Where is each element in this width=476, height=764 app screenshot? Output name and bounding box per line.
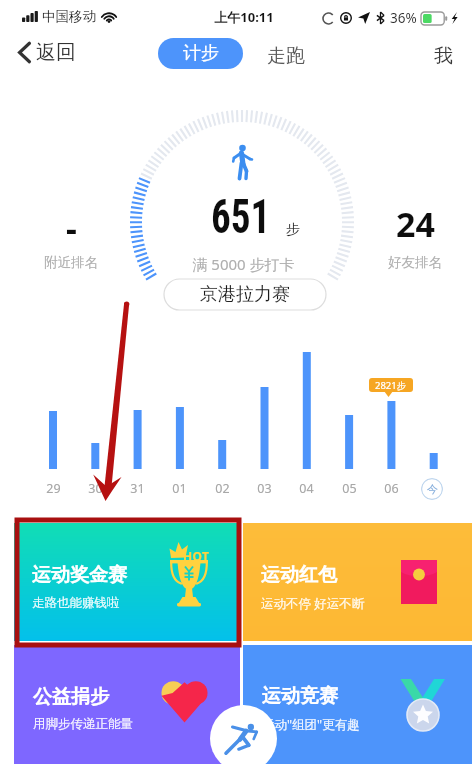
button[interactable]: 今 <box>421 478 443 500</box>
staticText: 计步 <box>183 42 219 65</box>
staticText: 24 <box>396 201 435 247</box>
staticText: 我 <box>434 44 453 68</box>
staticText: 上午10:11 <box>214 8 274 26</box>
button[interactable]: Start running <box>210 705 277 764</box>
staticText: 05 <box>342 480 357 497</box>
staticText: 02 <box>215 480 230 497</box>
staticText: 今 <box>427 482 438 496</box>
staticText: HOT <box>183 548 210 564</box>
staticText: 京港拉力赛 <box>200 283 290 306</box>
button[interactable]: 我 <box>429 40 458 72</box>
staticText: 06 <box>384 480 399 497</box>
staticText: - <box>66 205 77 251</box>
staticText: 运动竞赛 <box>262 684 338 708</box>
button[interactable]: 计步 <box>158 38 243 69</box>
staticText: 30 <box>88 480 103 497</box>
staticText: 36% <box>390 9 417 27</box>
button[interactable]: 运动奖金赛 <box>14 523 240 641</box>
staticText: 运动"组团"更有趣 <box>262 716 360 733</box>
button[interactable]: 公益捐步 <box>14 645 240 764</box>
staticText: 走路也能赚钱啦 <box>32 595 120 611</box>
staticText: 走跑 <box>267 44 305 68</box>
staticText: 满 5000 步打卡 <box>192 254 295 274</box>
staticText: 附近排名 <box>44 254 98 271</box>
button[interactable]: 运动竞赛 <box>243 645 472 764</box>
staticText: 好友排名 <box>388 254 442 271</box>
staticText: 04 <box>299 480 314 497</box>
staticText: 返回 <box>36 40 76 65</box>
button[interactable]: 运动红包 <box>243 523 472 641</box>
staticText: 步 <box>286 221 300 239</box>
staticText: 公益捐步 <box>33 685 109 709</box>
staticText: 运动红包 <box>261 563 337 587</box>
staticText: 31 <box>130 480 145 497</box>
button[interactable]: 返回 <box>14 36 80 69</box>
staticText: 运动奖金赛 <box>32 563 127 587</box>
staticText: 651 <box>211 188 271 245</box>
staticText: 29 <box>46 480 61 497</box>
staticText: 中国移动 <box>42 8 96 25</box>
staticText: 03 <box>257 480 272 497</box>
button[interactable]: 走跑 <box>262 40 310 72</box>
staticText: 运动不停 好运不断 <box>261 595 365 612</box>
staticText: 01 <box>172 480 187 497</box>
staticText: 用脚步传递正能量 <box>33 716 133 732</box>
button[interactable]: 京港拉力赛 <box>164 279 326 310</box>
staticText: 2821步 <box>375 379 407 392</box>
